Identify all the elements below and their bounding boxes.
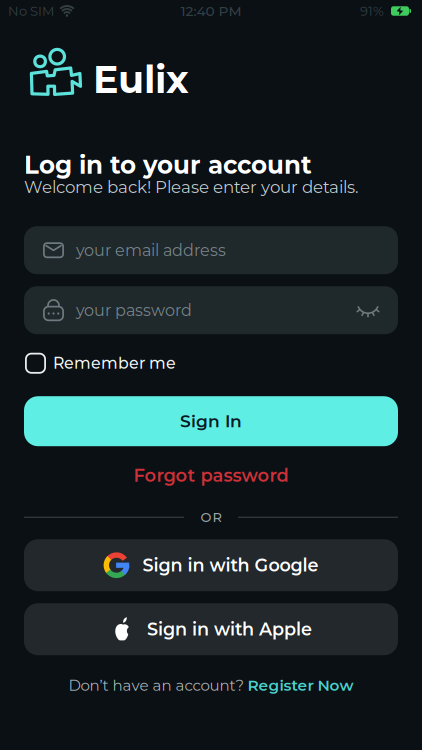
staticText: Log in to your account xyxy=(24,150,312,180)
staticText: No SIM xyxy=(8,3,54,19)
button[interactable]: Register Now xyxy=(247,676,353,695)
staticText: Sign in with Apple xyxy=(147,618,312,640)
button[interactable]: Sign in with Google xyxy=(24,539,398,591)
staticText: Forgot password xyxy=(133,464,288,486)
staticText: Remember me xyxy=(53,354,176,373)
staticText: your password xyxy=(76,300,192,320)
button[interactable]: Forgot password xyxy=(133,464,288,486)
button[interactable]: your email address xyxy=(24,226,398,274)
button[interactable]: Sign In xyxy=(24,396,398,446)
button[interactable]: your password xyxy=(24,286,398,334)
staticText: Sign In xyxy=(180,411,242,432)
staticText: Don’t have an account? xyxy=(68,676,244,694)
staticText: Eulix xyxy=(93,56,189,103)
staticText: your email address xyxy=(76,240,226,260)
staticText: Sign in with Google xyxy=(142,554,318,576)
button[interactable]: Show password xyxy=(357,303,379,318)
staticText: OR xyxy=(200,509,221,525)
staticText: Welcome back! Please enter your details. xyxy=(24,177,359,197)
staticText: 91% xyxy=(360,3,384,19)
staticText: 12:40 PM xyxy=(180,3,241,19)
button[interactable]: Sign in with Apple xyxy=(24,603,398,655)
staticText: Register Now xyxy=(247,676,353,695)
button[interactable]: Remember me xyxy=(25,353,176,374)
